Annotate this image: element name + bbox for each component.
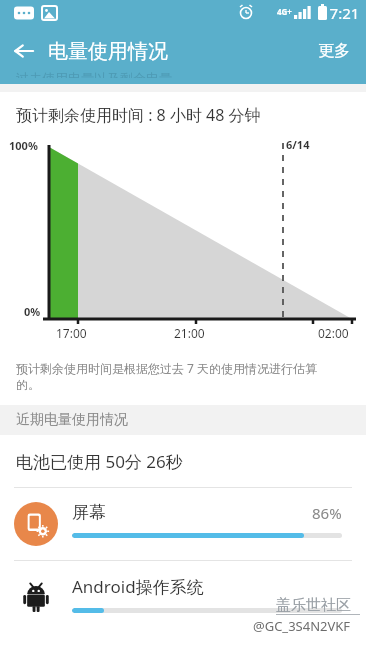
button[interactable]: Back <box>0 27 48 75</box>
staticText: 6/14 <box>286 137 310 152</box>
staticText: 电池已使用 50分 26秒 <box>16 450 183 473</box>
staticText: 过去使用电量以及剩余电量 <box>16 70 172 78</box>
staticText: @GC_3S4N2VKF <box>253 617 351 635</box>
staticText: 4G+ <box>277 6 292 17</box>
button[interactable]: Android操作系统 <box>0 561 366 633</box>
staticText: 盖乐世社区 <box>276 596 351 615</box>
staticText: 17:00 <box>56 325 87 341</box>
staticText: 预计剩余使用时间是根据您过去 7 天的使用情况进行估算 的。 <box>16 360 318 393</box>
staticText: 17:21 <box>321 3 360 23</box>
staticText: 02:00 <box>318 325 349 341</box>
button[interactable]: 电池已使用 50分 26秒 <box>0 435 366 487</box>
staticText: 更多 <box>318 41 350 61</box>
staticText: 0% <box>24 304 41 319</box>
staticText: 预计剩余使用时间 : 8 小时 48 分钟 <box>16 104 261 126</box>
staticText: 电量使用情况 <box>48 39 168 64</box>
staticText: Android操作系统 <box>72 575 204 598</box>
button[interactable]: 更多 <box>302 29 366 73</box>
staticText: 屏幕 <box>72 502 106 523</box>
staticText: 100% <box>9 138 38 153</box>
staticText: 21:00 <box>174 325 205 341</box>
button[interactable]: 屏幕 <box>0 488 366 560</box>
staticText: 86% <box>312 503 342 523</box>
staticText: 近期电量使用情况 <box>16 411 128 429</box>
